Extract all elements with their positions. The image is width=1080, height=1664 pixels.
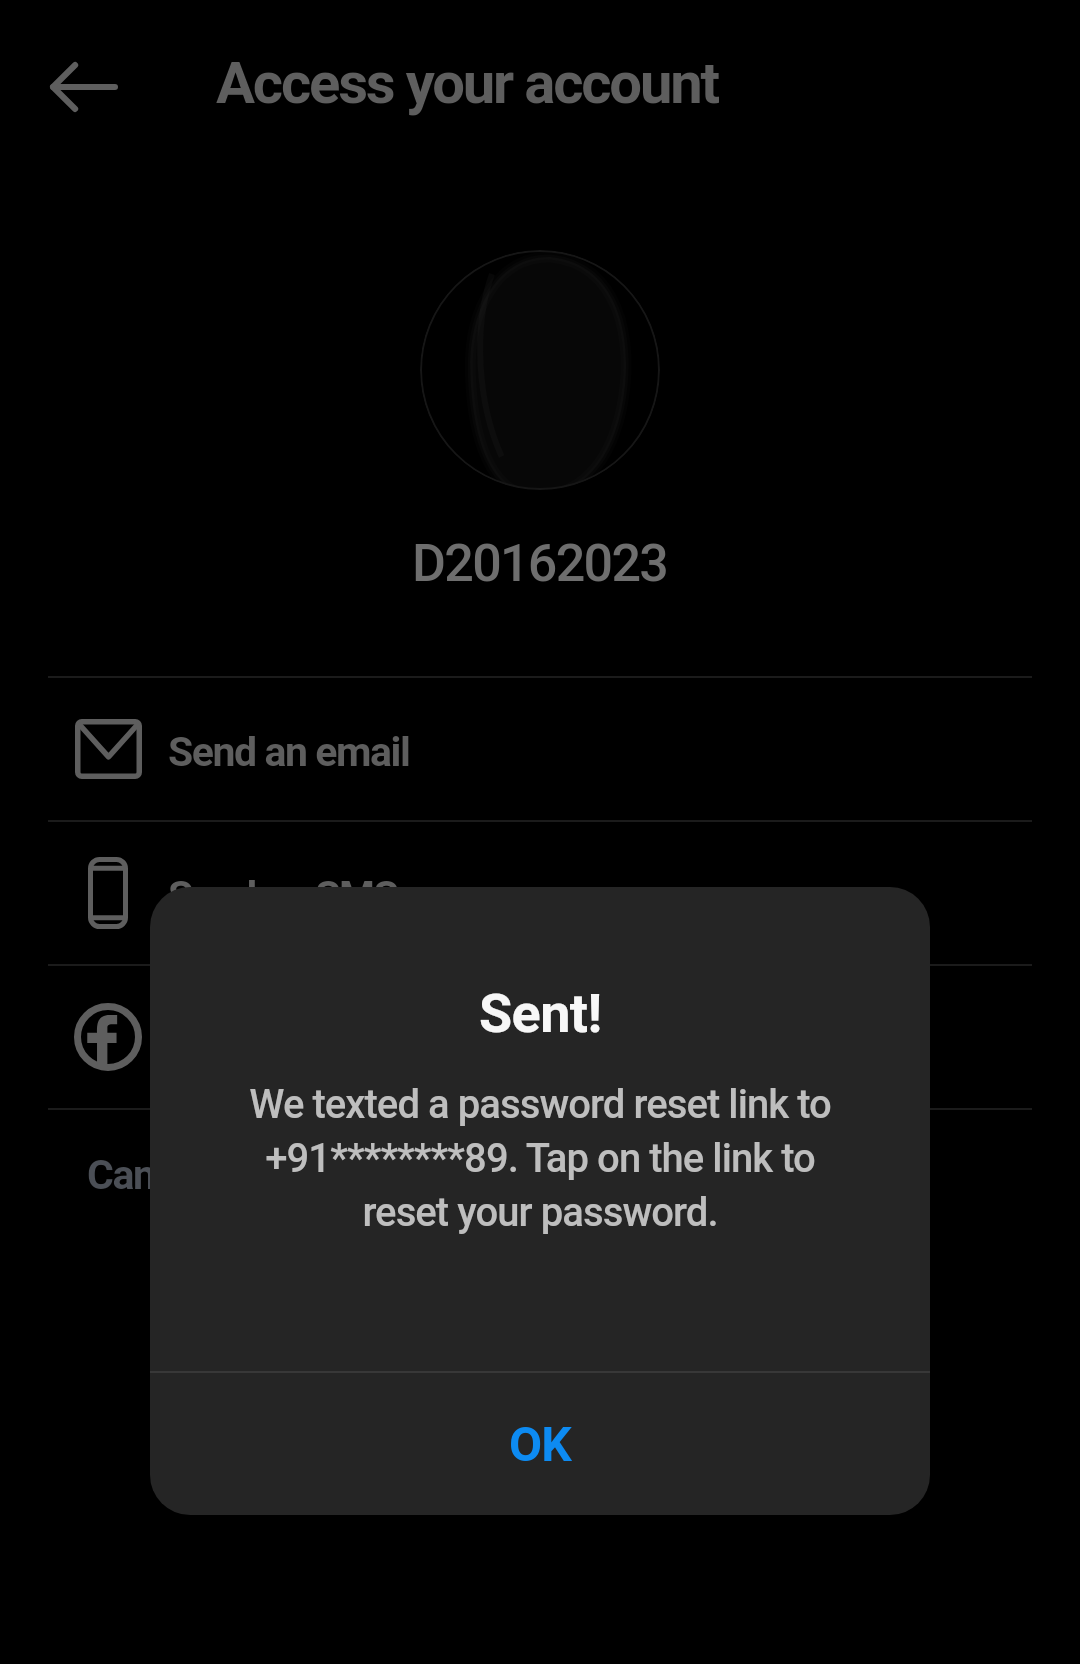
staticText: Log in with Facebook [168,1016,529,1064]
staticText: Send an SMS [168,872,398,920]
staticText: D20162023 [412,533,668,594]
staticText: Access your account [216,49,718,117]
staticText: Cancel [87,1151,205,1199]
button[interactable]: Back [32,35,136,139]
button[interactable]: OK [150,1373,930,1515]
staticText: Sent! [479,982,602,1045]
button[interactable]: Cancel [0,1110,1080,1253]
button[interactable]: Send an email [0,678,1080,820]
button[interactable]: Send an SMS [0,822,1080,964]
button[interactable]: Log in with Facebook [0,966,1080,1108]
staticText: Send an email [168,728,410,776]
staticText: We texted a password reset link to +91**… [228,1081,852,1236]
staticText: OK [509,1416,571,1472]
